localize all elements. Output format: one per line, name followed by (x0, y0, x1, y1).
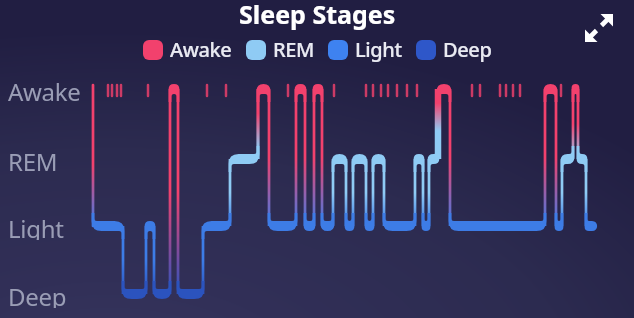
staticText: Awake (170, 36, 232, 63)
staticText: REM (8, 145, 58, 173)
staticText: Awake (8, 75, 81, 103)
staticText: Deep (8, 280, 67, 308)
button[interactable] (582, 11, 616, 45)
staticText: Light (8, 212, 64, 240)
staticText: REM (273, 36, 314, 63)
staticText: Light (355, 36, 402, 63)
button[interactable]: Deep (416, 36, 492, 63)
button[interactable]: Awake (143, 36, 232, 63)
staticText: Deep (443, 36, 492, 63)
staticText: Sleep Stages (239, 0, 396, 31)
button[interactable]: Light (328, 36, 402, 63)
button[interactable]: REM (246, 36, 314, 63)
